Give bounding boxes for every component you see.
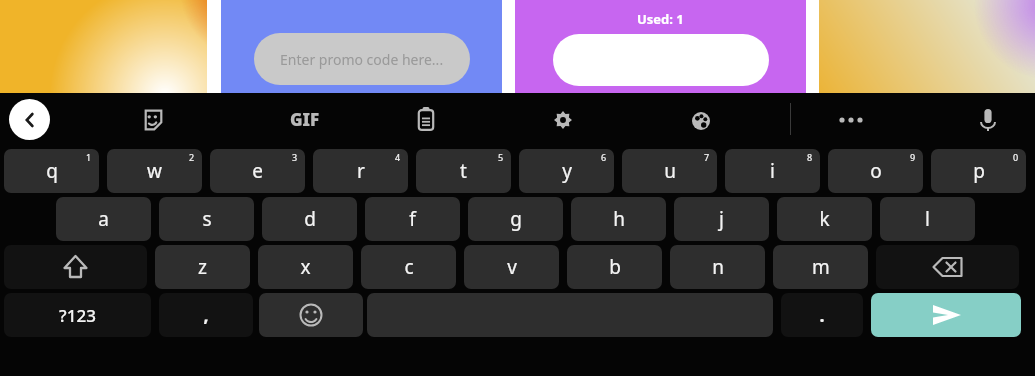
staticText: j (719, 206, 724, 232)
staticText: 0 (1013, 151, 1019, 163)
staticText: 9 (910, 151, 916, 163)
button[interactable]: Back (9, 99, 50, 140)
staticText: o (870, 158, 882, 184)
button[interactable]: y (519, 149, 614, 193)
button[interactable] (819, 0, 1035, 93)
staticText: 7 (704, 151, 710, 163)
button[interactable]: Enter promo code here... (221, 0, 502, 93)
button[interactable]: More options (831, 93, 871, 146)
staticText: 4 (395, 151, 401, 163)
button[interactable]: b (567, 245, 662, 289)
staticText: t (460, 158, 467, 184)
button[interactable]: . (781, 293, 863, 337)
staticText: v (507, 254, 517, 280)
staticText: h (613, 206, 625, 232)
button[interactable] (553, 34, 769, 86)
staticText: . (819, 303, 825, 328)
button[interactable]: Clipboard (406, 93, 446, 146)
staticText: ?123 (59, 304, 96, 327)
staticText: , (203, 303, 209, 328)
button[interactable]: d (262, 197, 357, 241)
staticText: b (609, 254, 621, 280)
staticText: d (304, 206, 316, 232)
button[interactable]: z (155, 245, 250, 289)
button[interactable]: Emoji (259, 293, 363, 337)
staticText: l (925, 206, 930, 232)
button[interactable]: f (365, 197, 460, 241)
button[interactable]: g (468, 197, 563, 241)
staticText: c (404, 254, 414, 280)
button[interactable]: h (571, 197, 666, 241)
staticText: m (812, 254, 830, 280)
staticText: a (98, 206, 109, 232)
button[interactable]: n (670, 245, 765, 289)
staticText: 8 (807, 151, 813, 163)
button[interactable]: Used: 1 (515, 0, 806, 93)
button[interactable]: j (674, 197, 769, 241)
staticText: 6 (601, 151, 607, 163)
staticText: q (46, 158, 58, 184)
staticText: i (770, 158, 775, 184)
button[interactable]: a (56, 197, 151, 241)
button[interactable]: l (880, 197, 975, 241)
staticText: y (562, 158, 572, 184)
button[interactable]: Send (871, 293, 1021, 337)
staticText: g (510, 206, 522, 232)
staticText: f (409, 206, 416, 232)
button[interactable]: ?123 (4, 293, 151, 337)
button[interactable]: i (725, 149, 820, 193)
staticText: z (198, 254, 207, 280)
staticText: 3 (292, 151, 298, 163)
button[interactable]: c (361, 245, 456, 289)
button[interactable]: Theme (681, 93, 721, 146)
button[interactable]: , (159, 293, 253, 337)
staticText: u (664, 158, 676, 184)
button[interactable]: Voice input (968, 93, 1008, 146)
staticText: w (147, 158, 162, 184)
button[interactable]: k (777, 197, 872, 241)
staticText: 5 (498, 151, 504, 163)
button[interactable]: w (107, 149, 202, 193)
button[interactable]: v (464, 245, 559, 289)
staticText: GIF (290, 108, 320, 131)
button[interactable]: GIF (275, 93, 335, 146)
button[interactable]: p (931, 149, 1026, 193)
staticText: 1 (86, 151, 92, 163)
staticText: Used: 1 (637, 10, 684, 28)
staticText: 2 (189, 151, 195, 163)
button[interactable]: Shift (4, 245, 147, 289)
button[interactable]: e (210, 149, 305, 193)
button[interactable]: o (828, 149, 923, 193)
button[interactable]: q (4, 149, 99, 193)
button[interactable]: r (313, 149, 408, 193)
staticText: x (300, 254, 311, 280)
button[interactable]: Settings (543, 93, 583, 146)
button[interactable]: Stickers (132, 93, 172, 146)
staticText: r (357, 158, 365, 184)
staticText: Enter promo code here... (280, 50, 444, 69)
button[interactable] (0, 0, 207, 93)
staticText: n (712, 254, 724, 280)
staticText: k (819, 206, 830, 232)
staticText: s (202, 206, 212, 232)
staticText: e (252, 158, 263, 184)
button[interactable]: Backspace (876, 245, 1019, 289)
button[interactable]: s (159, 197, 254, 241)
staticText: p (973, 158, 985, 184)
button[interactable]: t (416, 149, 511, 193)
button[interactable]: x (258, 245, 353, 289)
button[interactable]: m (773, 245, 868, 289)
button[interactable]: u (622, 149, 717, 193)
button[interactable]: Enter promo code here... (254, 33, 470, 85)
